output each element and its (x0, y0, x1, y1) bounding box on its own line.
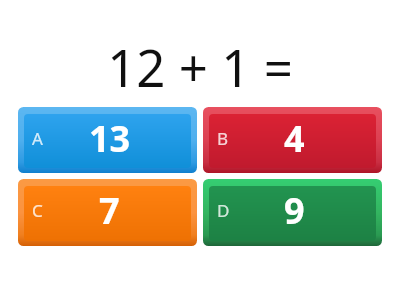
button[interactable]: B (203, 107, 382, 173)
button[interactable]: D (203, 179, 382, 246)
staticText: C (32, 199, 43, 222)
staticText: A (32, 127, 43, 150)
staticText: 4 (284, 114, 305, 159)
staticText: 13 (89, 114, 131, 159)
staticText: 12 + 1 = (107, 32, 293, 96)
staticText: D (217, 199, 230, 222)
staticText: B (217, 127, 229, 150)
button[interactable]: A (18, 107, 197, 173)
staticText: 9 (284, 186, 305, 232)
staticText: 7 (99, 186, 120, 232)
button[interactable]: C (18, 179, 197, 246)
